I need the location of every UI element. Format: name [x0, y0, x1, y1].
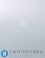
- staticText: интернет-магазин: [9, 54, 32, 58]
- staticText: Я: [2, 50, 6, 57]
- staticText: САНТЕХНИКА: [9, 49, 43, 54]
